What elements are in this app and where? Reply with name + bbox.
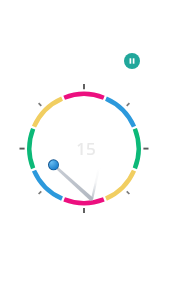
staticText: 15 bbox=[76, 137, 96, 160]
button[interactable]: Pause bbox=[124, 53, 140, 69]
